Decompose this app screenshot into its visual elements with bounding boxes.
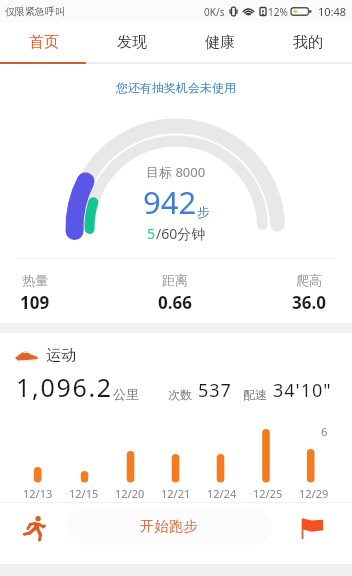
staticText: 12/20	[115, 486, 145, 501]
button[interactable]: 热量	[0, 272, 80, 314]
button[interactable]: 首页	[0, 22, 88, 62]
staticText: 12/29	[299, 486, 329, 501]
staticText: 健康	[205, 33, 235, 52]
staticText: 首页	[29, 33, 59, 52]
staticText: 12/15	[69, 486, 99, 501]
button[interactable]: 运动	[14, 346, 352, 365]
staticText: /60分钟	[156, 224, 206, 243]
staticText: 公里	[113, 386, 139, 402]
staticText: 12/24	[207, 486, 237, 501]
staticText: 运动	[46, 346, 76, 365]
staticText: 配速	[243, 387, 267, 402]
staticText: 12%	[268, 5, 288, 19]
staticText: 开始跑步	[140, 518, 199, 536]
staticText: 12/25	[253, 486, 283, 501]
staticText: 6	[321, 424, 328, 439]
staticText: 次数	[168, 387, 192, 402]
staticText: 爬高	[296, 272, 322, 288]
staticText: 36.0	[292, 291, 326, 314]
button[interactable]: 健康	[176, 22, 264, 62]
staticText: 5	[147, 224, 156, 243]
staticText: 您还有抽奖机会未使用	[0, 80, 352, 95]
button[interactable]: 我的	[264, 22, 352, 62]
staticText: 942	[143, 181, 197, 223]
staticText: 发现	[117, 33, 147, 52]
staticText: 0.66	[158, 291, 192, 314]
button[interactable]: Start run	[0, 503, 67, 553]
staticText: 目标 8000	[146, 163, 206, 181]
button[interactable]: 发现	[88, 22, 176, 62]
staticText: 0K/s	[204, 5, 225, 19]
button[interactable]: Marker flag	[272, 503, 352, 553]
staticText: 10:48	[318, 4, 347, 19]
staticText: 34'10"	[273, 378, 332, 403]
staticText: 步	[197, 204, 210, 220]
button[interactable]: 开始跑步	[67, 508, 272, 545]
button[interactable]: 爬高	[264, 272, 352, 314]
staticText: 距离	[162, 272, 188, 288]
button[interactable]: 距离	[130, 272, 220, 314]
staticText: 1,096.2	[16, 370, 113, 404]
staticText: 我的	[293, 33, 323, 52]
staticText: 热量	[22, 272, 48, 288]
staticText: 109	[20, 291, 50, 314]
staticText: 12/13	[23, 486, 53, 501]
staticText: 12/21	[161, 486, 191, 501]
staticText: 537	[198, 378, 232, 403]
staticText: 仅限紧急呼叫	[5, 5, 65, 18]
